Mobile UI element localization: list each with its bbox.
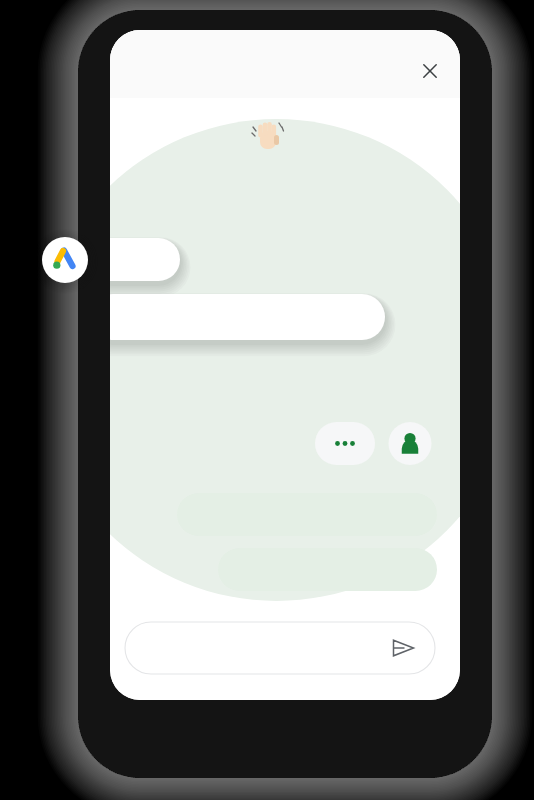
button[interactable]: Close	[0, 0, 534, 800]
